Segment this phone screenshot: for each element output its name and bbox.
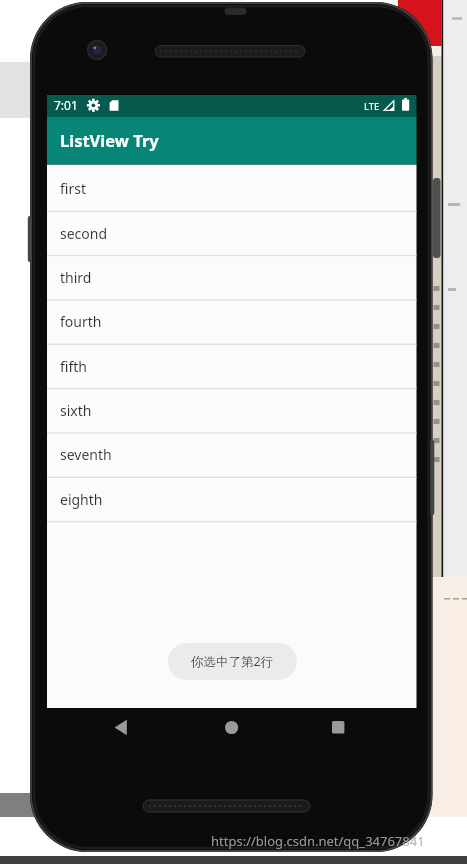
button[interactable]: first bbox=[47, 166, 417, 210]
staticText: https://blog.csdn.net/qq_34767841 bbox=[211, 832, 425, 850]
staticText: eighth bbox=[60, 490, 103, 509]
button[interactable] bbox=[107, 712, 139, 744]
button[interactable]: second bbox=[47, 211, 417, 255]
staticText: 7:01 bbox=[54, 97, 78, 113]
staticText: second bbox=[60, 224, 108, 243]
staticText: first bbox=[60, 179, 86, 198]
staticText: sixth bbox=[60, 401, 92, 420]
button[interactable]: sixth bbox=[47, 388, 417, 432]
staticText: third bbox=[60, 268, 92, 287]
staticText: fifth bbox=[60, 357, 87, 376]
button[interactable]: eighth bbox=[47, 477, 417, 521]
button[interactable] bbox=[216, 712, 248, 744]
button[interactable]: third bbox=[47, 255, 417, 299]
staticText: fourth bbox=[60, 312, 102, 331]
button[interactable]: 你选中了第2行 bbox=[168, 643, 297, 680]
button[interactable]: seventh bbox=[47, 432, 417, 476]
button[interactable]: fifth bbox=[47, 344, 417, 388]
staticText: seventh bbox=[60, 445, 112, 464]
staticText: 你选中了第2行 bbox=[191, 653, 274, 670]
button[interactable] bbox=[322, 712, 354, 744]
button[interactable]: fourth bbox=[47, 299, 417, 343]
staticText: ListView Try bbox=[60, 129, 159, 151]
staticText: LTE bbox=[364, 100, 380, 113]
